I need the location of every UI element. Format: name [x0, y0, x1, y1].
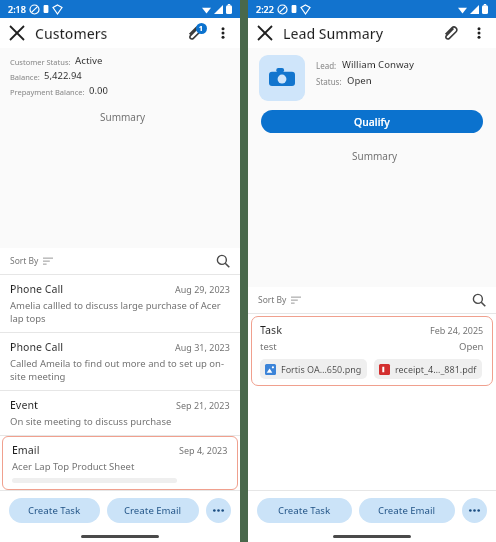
- staticText: Sep 21, 2023: [176, 399, 230, 411]
- button[interactable]: More options: [462, 498, 487, 523]
- staticText: Active: [75, 54, 103, 67]
- button[interactable]: Phone Call: [0, 333, 240, 390]
- staticText: Balance:: [10, 72, 40, 82]
- staticText: Prepayment Balance:: [10, 87, 85, 97]
- staticText: Sort By: [258, 294, 287, 306]
- staticText: Feb 24, 2025: [430, 324, 484, 336]
- staticText: Phone Call: [10, 282, 175, 296]
- staticText: Summary: [100, 110, 146, 124]
- staticText: Acer Lap Top Product Sheet: [12, 460, 135, 473]
- staticText: Customer Status:: [10, 57, 71, 67]
- staticText: 5,422.94: [44, 69, 82, 82]
- staticText: 1: [199, 24, 204, 34]
- button[interactable]: Summary: [248, 142, 496, 170]
- staticText: receipt_4…_881.pdf: [395, 363, 477, 375]
- button[interactable]: Close: [258, 26, 272, 40]
- button[interactable]: Sort By: [10, 255, 53, 267]
- staticText: 2:18: [8, 3, 26, 15]
- staticText: Aug 29, 2023: [175, 283, 230, 295]
- button[interactable]: Create Email: [107, 498, 199, 523]
- staticText: William Conway: [342, 58, 415, 71]
- button[interactable]: Create Task: [257, 498, 352, 523]
- button[interactable]: Fortis OA…650.png: [260, 359, 367, 379]
- button[interactable]: Qualify: [261, 110, 483, 133]
- button[interactable]: More options: [472, 26, 486, 40]
- staticText: test: [260, 340, 459, 353]
- staticText: Qualify: [354, 115, 390, 129]
- button[interactable]: Task: [251, 316, 493, 386]
- staticText: Called Ameila to find out more and to se…: [10, 357, 230, 383]
- button[interactable]: Close: [10, 26, 24, 40]
- button[interactable]: Search: [216, 254, 230, 268]
- staticText: Customers: [35, 24, 186, 43]
- staticText: 0.00: [89, 84, 108, 97]
- button[interactable]: More options: [216, 26, 230, 40]
- staticText: Sort By: [10, 255, 39, 267]
- button[interactable]: Attachments: [186, 25, 202, 41]
- staticText: Create Task: [28, 504, 81, 517]
- button[interactable]: Summary: [0, 103, 240, 131]
- staticText: Event: [10, 398, 176, 412]
- staticText: Open: [459, 340, 484, 353]
- staticText: Open: [347, 74, 372, 87]
- button[interactable]: Photo: [259, 55, 305, 101]
- staticText: Fortis OA…650.png: [281, 363, 362, 375]
- staticText: Status:: [316, 76, 342, 87]
- staticText: Email: [12, 443, 179, 457]
- button[interactable]: Create Task: [9, 498, 100, 523]
- staticText: Task: [260, 323, 430, 337]
- button[interactable]: Create Email: [359, 498, 455, 523]
- button[interactable]: Attachments: [442, 25, 458, 41]
- staticText: Amelia callled to discuss large purchase…: [10, 299, 230, 325]
- staticText: Sep 4, 2023: [179, 444, 228, 456]
- button[interactable]: Phone Call: [0, 275, 240, 332]
- staticText: Summary: [352, 149, 398, 163]
- staticText: Create Task: [278, 504, 331, 517]
- button[interactable]: Event: [0, 391, 240, 435]
- staticText: 2:22: [256, 3, 274, 15]
- staticText: Lead:: [316, 60, 337, 71]
- button[interactable]: Search: [472, 293, 486, 307]
- staticText: On site meeting to discuss purchase: [10, 415, 172, 428]
- button[interactable]: Email: [2, 436, 238, 490]
- staticText: Lead Summary: [283, 24, 442, 43]
- staticText: Aug 31, 2023: [175, 341, 230, 353]
- staticText: Create Email: [378, 504, 436, 517]
- button[interactable]: receipt_4…_881.pdf: [374, 359, 482, 379]
- button[interactable]: More options: [206, 498, 231, 523]
- staticText: Create Email: [124, 504, 182, 517]
- staticText: Phone Call: [10, 340, 175, 354]
- button[interactable]: Sort By: [258, 294, 301, 306]
